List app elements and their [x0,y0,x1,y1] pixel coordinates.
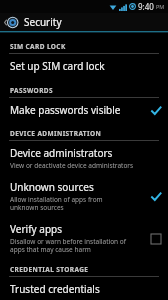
staticText: SIM CARD LOCK [10,42,66,51]
button[interactable]: Device administrators [0,141,168,175]
button[interactable]: Checked [149,104,162,117]
staticText: Trusted credentials [10,282,100,295]
button[interactable]: Verify apps [0,217,168,259]
staticText: PM [156,3,165,10]
staticText: Allow installation of apps from unknown … [10,195,103,212]
staticText: Unknown sources [10,180,94,194]
button[interactable]: Trusted credentials [0,277,168,300]
staticText: View or deactivate device administrators [10,161,134,170]
staticText: PASSWORDS [10,86,53,95]
staticText: CREDENTIAL STORAGE [10,265,89,274]
button[interactable]: Navigate up [0,13,168,31]
staticText: Disallow or warn before installation of … [10,237,126,254]
button[interactable]: Unchecked [149,232,162,245]
staticText: Make passwords visible [10,103,121,117]
button[interactable]: Set up SIM card lock [0,54,168,78]
button[interactable]: Make passwords visible [0,98,168,122]
other: Navigate up [4,15,19,30]
staticText: Set up SIM card lock [10,59,105,73]
staticText: 9:40 [138,1,154,12]
button[interactable]: Unknown sources [0,175,168,217]
button[interactable]: Checked [149,190,162,203]
staticText: Device administrators [10,146,113,160]
staticText: Verify apps [10,222,62,236]
staticText: Security [24,15,62,29]
staticText: DEVICE ADMINISTRATION [10,129,102,138]
